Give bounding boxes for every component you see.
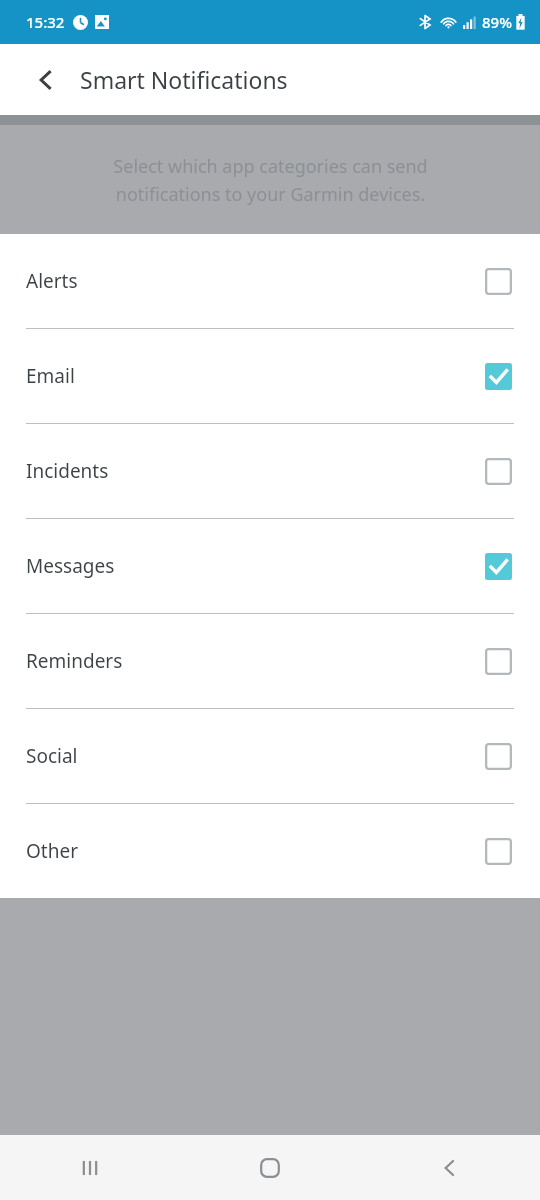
button[interactable]: Recent apps [0, 1135, 180, 1200]
staticText: Alerts [26, 268, 78, 294]
button[interactable]: Back [360, 1135, 540, 1200]
button[interactable]: Messages [0, 519, 540, 613]
staticText: Messages [26, 553, 115, 579]
staticText: 89% [482, 12, 512, 32]
button[interactable]: Alerts [0, 234, 540, 328]
staticText: Smart Notifications [80, 64, 288, 95]
staticText: Select which app categories can send not… [113, 154, 428, 206]
button[interactable]: Back [22, 56, 70, 104]
staticText: Incidents [26, 458, 109, 484]
button[interactable]: Other [0, 804, 540, 898]
button[interactable]: Reminders [0, 614, 540, 708]
staticText: Reminders [26, 648, 123, 674]
button[interactable]: Social [0, 709, 540, 803]
button[interactable]: Incidents [0, 424, 540, 518]
button[interactable]: Email [0, 329, 540, 423]
staticText: Social [26, 743, 78, 769]
staticText: Email [26, 363, 75, 389]
button[interactable]: Home [180, 1135, 360, 1200]
staticText: Other [26, 838, 79, 864]
staticText: 15:32 [26, 12, 65, 32]
